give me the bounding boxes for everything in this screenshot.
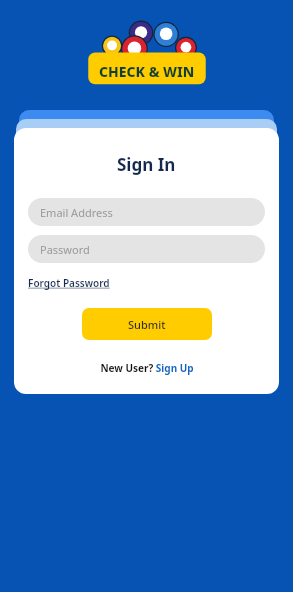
staticText: Forgot Password	[28, 276, 110, 290]
button[interactable]: New User? Sign Up	[100, 361, 194, 375]
button[interactable]: Forgot Password	[28, 276, 110, 290]
staticText: New User? Sign Up	[100, 361, 194, 375]
button[interactable]: Password	[28, 235, 265, 263]
staticText: Sign In	[117, 153, 176, 176]
staticText: Submit	[128, 317, 166, 332]
staticText: Email Address	[40, 205, 113, 220]
staticText: Password	[40, 242, 90, 257]
button[interactable]: Email Address	[28, 198, 265, 226]
other: Check & Win logo	[81, 14, 213, 88]
button[interactable]: Submit	[82, 308, 212, 340]
staticText: CHECK & WIN	[99, 62, 195, 81]
